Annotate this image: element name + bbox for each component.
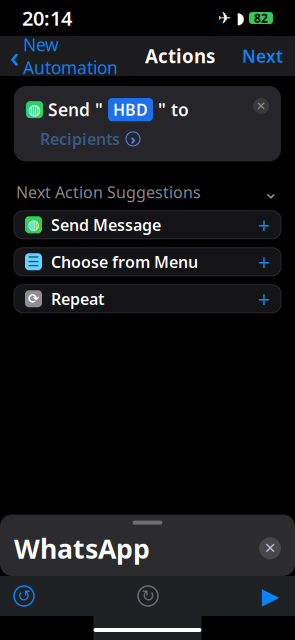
staticText: ☰	[27, 254, 39, 269]
staticText: ✕	[256, 99, 266, 113]
staticText: Recipients	[40, 128, 120, 149]
staticText: " to	[158, 98, 189, 121]
button[interactable]: ⟳	[14, 285, 281, 313]
button[interactable]: Next	[242, 38, 295, 73]
staticText: HBD	[113, 99, 148, 120]
staticText: New Automation	[23, 33, 118, 79]
staticText: Next Action Suggestions	[16, 181, 201, 203]
staticText: ◍	[27, 217, 39, 232]
staticText: Repeat	[51, 288, 104, 309]
staticText: ↻	[141, 587, 154, 605]
button[interactable]: Run	[262, 573, 295, 619]
staticText: ⌄	[263, 181, 279, 203]
staticText: +	[258, 211, 270, 239]
button[interactable]: Next Action Suggestions	[0, 161, 295, 211]
staticText: 20:14	[22, 5, 72, 31]
button[interactable]: ◍	[14, 211, 281, 239]
button[interactable]: Close	[259, 537, 281, 559]
staticText: ✈	[218, 9, 231, 27]
staticText: ›	[130, 129, 135, 149]
button[interactable]: ‹	[0, 27, 118, 85]
button[interactable]: Redo	[138, 586, 158, 606]
staticText: ‹	[10, 36, 20, 75]
staticText: Actions	[145, 44, 215, 68]
staticText: ↺	[17, 587, 30, 605]
button[interactable]: ◍	[0, 76, 295, 161]
staticText: WhatsApp	[14, 531, 150, 566]
button[interactable]: ☰	[14, 248, 281, 276]
staticText: Send "	[48, 98, 103, 121]
staticText: +	[258, 285, 270, 313]
staticText: ▶	[262, 583, 279, 609]
staticText: +	[258, 248, 270, 276]
button[interactable]: Undo	[0, 576, 34, 616]
staticText: Send Message	[51, 214, 161, 235]
staticText: 82	[254, 10, 268, 26]
staticText: ⟳	[28, 291, 39, 306]
staticText: Next	[242, 44, 283, 67]
staticText: Choose from Menu	[51, 251, 198, 272]
staticText: ◗	[236, 9, 244, 27]
staticText: ✕	[264, 540, 276, 557]
staticText: ◍	[28, 101, 41, 118]
